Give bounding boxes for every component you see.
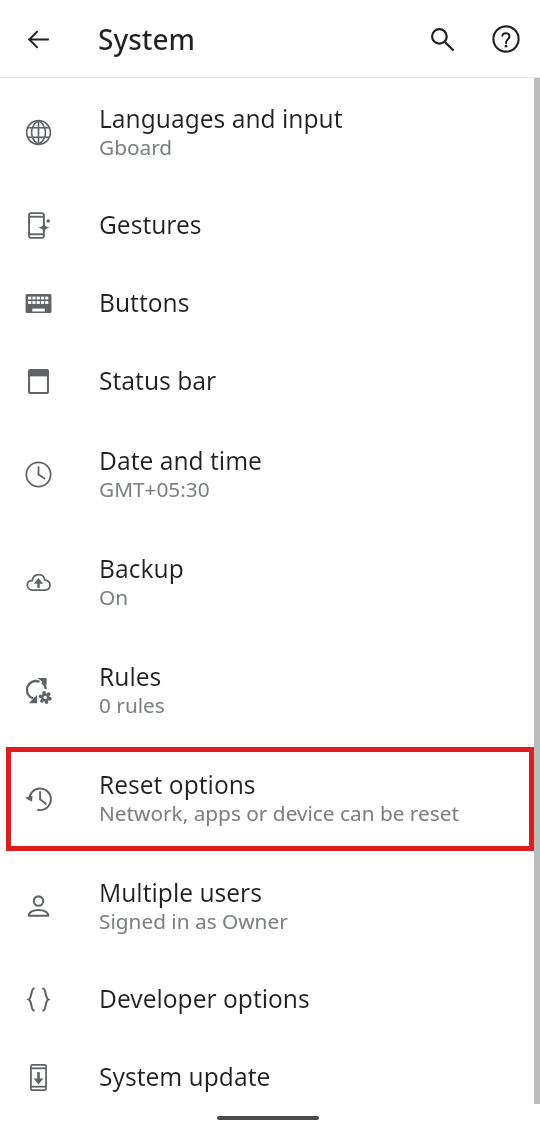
button[interactable]: Help: [482, 15, 530, 63]
button[interactable]: Back: [14, 15, 62, 63]
button[interactable]: Reset options: [0, 744, 540, 852]
staticText: Languages and input: [99, 102, 343, 135]
staticText: GMT+05:30: [99, 475, 210, 503]
staticText: On: [99, 583, 129, 611]
button[interactable]: Status bar: [0, 342, 540, 420]
staticText: Reset options: [99, 768, 256, 801]
button[interactable]: Buttons: [0, 264, 540, 342]
staticText: Signed in as Owner: [99, 907, 288, 935]
staticText: Date and time: [99, 444, 262, 477]
staticText: Multiple users: [99, 876, 262, 909]
staticText: Backup: [99, 552, 184, 585]
staticText: Gestures: [99, 208, 202, 241]
staticText: Buttons: [99, 286, 190, 319]
staticText: System: [98, 20, 196, 58]
staticText: Developer options: [99, 982, 310, 1015]
button[interactable]: Date and time: [0, 420, 540, 528]
staticText: Rules: [99, 660, 162, 693]
staticText: Network, apps or device can be reset: [99, 799, 459, 827]
staticText: Gboard: [99, 133, 173, 161]
button[interactable]: Multiple users: [0, 852, 540, 960]
button[interactable]: Languages and input: [0, 78, 540, 186]
button[interactable]: Gestures: [0, 186, 540, 264]
button[interactable]: Search: [418, 15, 466, 63]
button[interactable]: Rules: [0, 636, 540, 744]
button[interactable]: System update: [0, 1038, 540, 1116]
staticText: System update: [99, 1060, 271, 1093]
button[interactable]: Backup: [0, 528, 540, 636]
staticText: Status bar: [99, 364, 217, 397]
staticText: 0 rules: [99, 691, 165, 719]
button[interactable]: Developer options: [0, 960, 540, 1038]
